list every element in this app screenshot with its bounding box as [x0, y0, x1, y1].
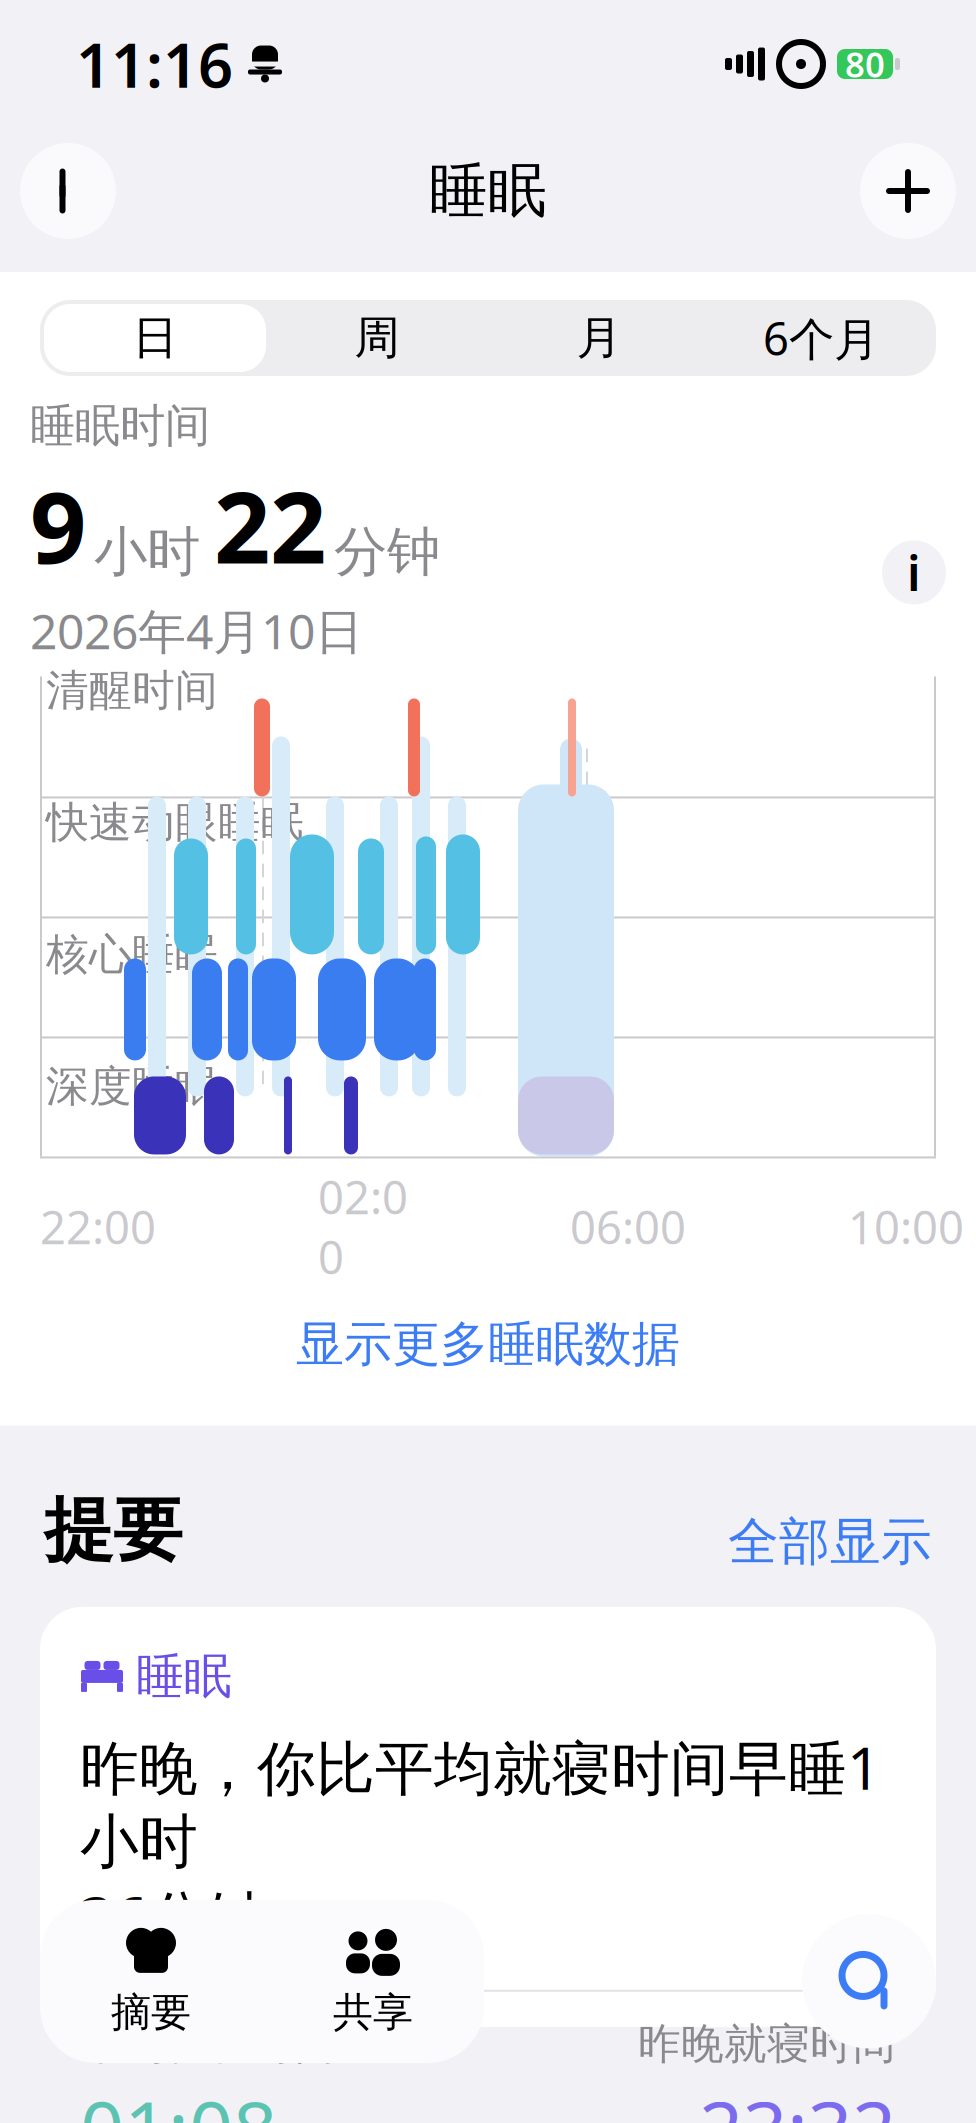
staticText: 02:00	[318, 1166, 408, 1287]
staticText: 23:32	[699, 2076, 896, 2123]
button[interactable]: 摘要	[40, 1900, 262, 2063]
staticText: 11:16	[76, 23, 233, 105]
staticText: 22:00	[40, 1196, 156, 1257]
staticText: 小时	[94, 519, 200, 585]
button[interactable]: Info	[882, 540, 946, 662]
staticText: 周	[354, 310, 399, 366]
button[interactable]: 全部显示	[728, 1511, 932, 1573]
button[interactable]: 显示更多睡眠数据	[0, 1287, 976, 1402]
staticText: 核心睡眠	[46, 928, 218, 981]
staticText: 2026年4月10日	[30, 599, 363, 662]
staticText: 80	[845, 41, 885, 87]
staticText: 提要	[44, 1488, 182, 1573]
staticText: 睡眠	[136, 1647, 232, 1706]
staticText: 显示更多睡眠数据	[296, 1315, 680, 1374]
button[interactable]: 月	[488, 304, 710, 372]
staticText: 日	[132, 310, 177, 366]
staticText: 全部显示	[728, 1511, 932, 1573]
staticText: 昨晚，你比平均就寝时间早睡1小时 36分钟。	[80, 1728, 881, 1956]
staticText: 睡眠	[429, 155, 547, 227]
button[interactable]: 共享	[262, 1900, 484, 2063]
staticText: 06:00	[570, 1196, 686, 1257]
staticText: 清醒时间	[46, 664, 218, 717]
staticText: 摘要	[111, 1988, 191, 2037]
staticText: 月	[576, 310, 621, 366]
staticText: 分钟	[334, 519, 440, 585]
button[interactable]: Add	[860, 143, 956, 239]
staticText: 9	[30, 460, 86, 591]
staticText: 10:00	[848, 1196, 964, 1257]
button[interactable]: 周	[266, 304, 488, 372]
staticText: i	[907, 541, 921, 604]
staticText: 深度睡眠	[46, 1060, 218, 1113]
button[interactable]: 睡眠	[40, 1607, 936, 2027]
button[interactable]: 日	[44, 304, 266, 372]
staticText: 昨晚就寝时间	[638, 2018, 896, 2070]
button[interactable]: 6个月	[710, 304, 932, 372]
staticText: 6个月	[763, 308, 879, 368]
staticText: 平均就寝时间	[80, 2018, 338, 2070]
button[interactable]: Search	[802, 1914, 936, 2048]
staticText: 快速动眼睡眠	[46, 796, 304, 849]
staticText: 共享	[333, 1988, 413, 2037]
staticText: 睡眠时间	[30, 398, 210, 454]
button[interactable]: Back	[20, 143, 116, 239]
staticText: 01:08	[80, 2076, 277, 2123]
staticText: 22	[214, 460, 326, 591]
